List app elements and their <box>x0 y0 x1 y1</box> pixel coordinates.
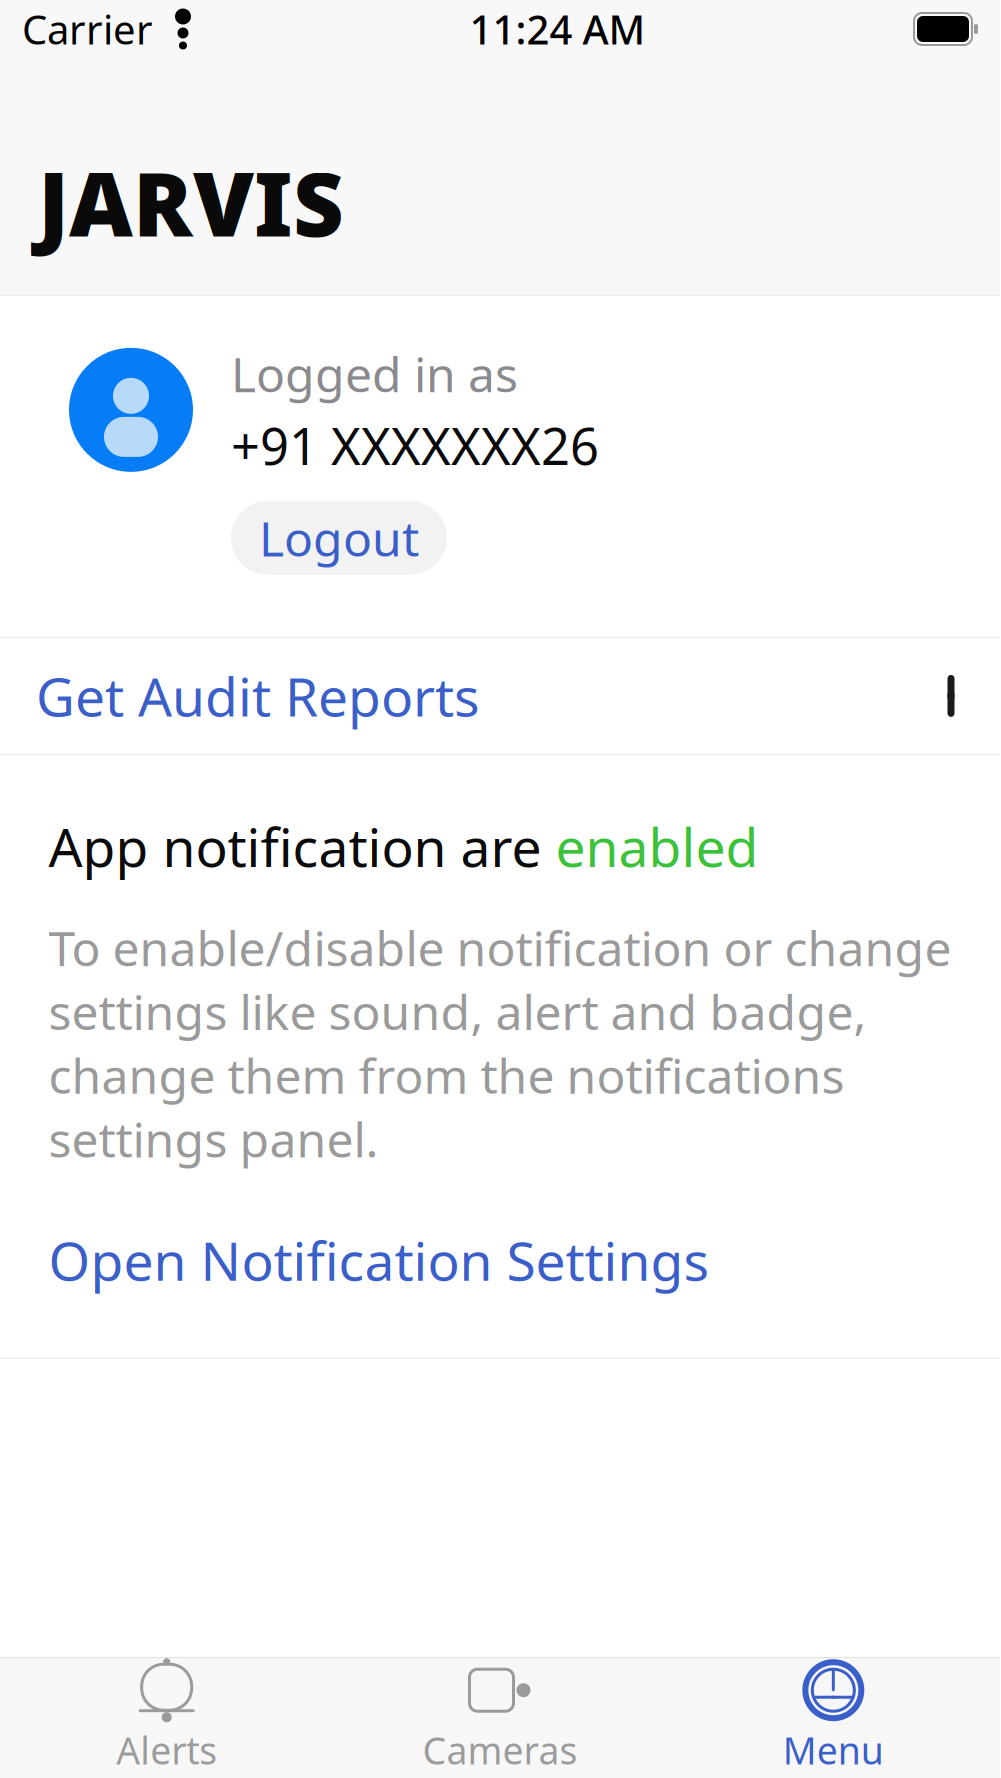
button[interactable]: Alerts <box>0 1658 333 1778</box>
staticText: Menu <box>783 1725 884 1775</box>
staticText: App notification are <box>48 811 555 882</box>
button[interactable]: Logout <box>231 501 447 575</box>
staticText: +91 XXXXXXX26 <box>231 412 599 479</box>
button[interactable]: Menu <box>667 1658 1000 1778</box>
button[interactable]: Open Notification Settings <box>48 1215 709 1305</box>
staticText: Alerts <box>116 1725 217 1775</box>
staticText: Open Notification Settings <box>48 1225 709 1295</box>
staticText: Cameras <box>422 1725 577 1775</box>
staticText: To enable/disable notification or change… <box>48 916 951 1171</box>
staticText: Get Audit Reports <box>36 660 480 731</box>
button[interactable]: Cameras <box>333 1658 667 1778</box>
staticText: JARVIS <box>38 144 344 261</box>
staticText: Carrier <box>22 2 153 55</box>
staticText: 11:24 AM <box>469 2 645 55</box>
staticText: Logged in as <box>231 342 518 406</box>
staticText: enabled <box>555 811 758 882</box>
staticText: Logout <box>259 506 419 570</box>
button[interactable]: Get Audit Reports <box>0 638 1000 754</box>
